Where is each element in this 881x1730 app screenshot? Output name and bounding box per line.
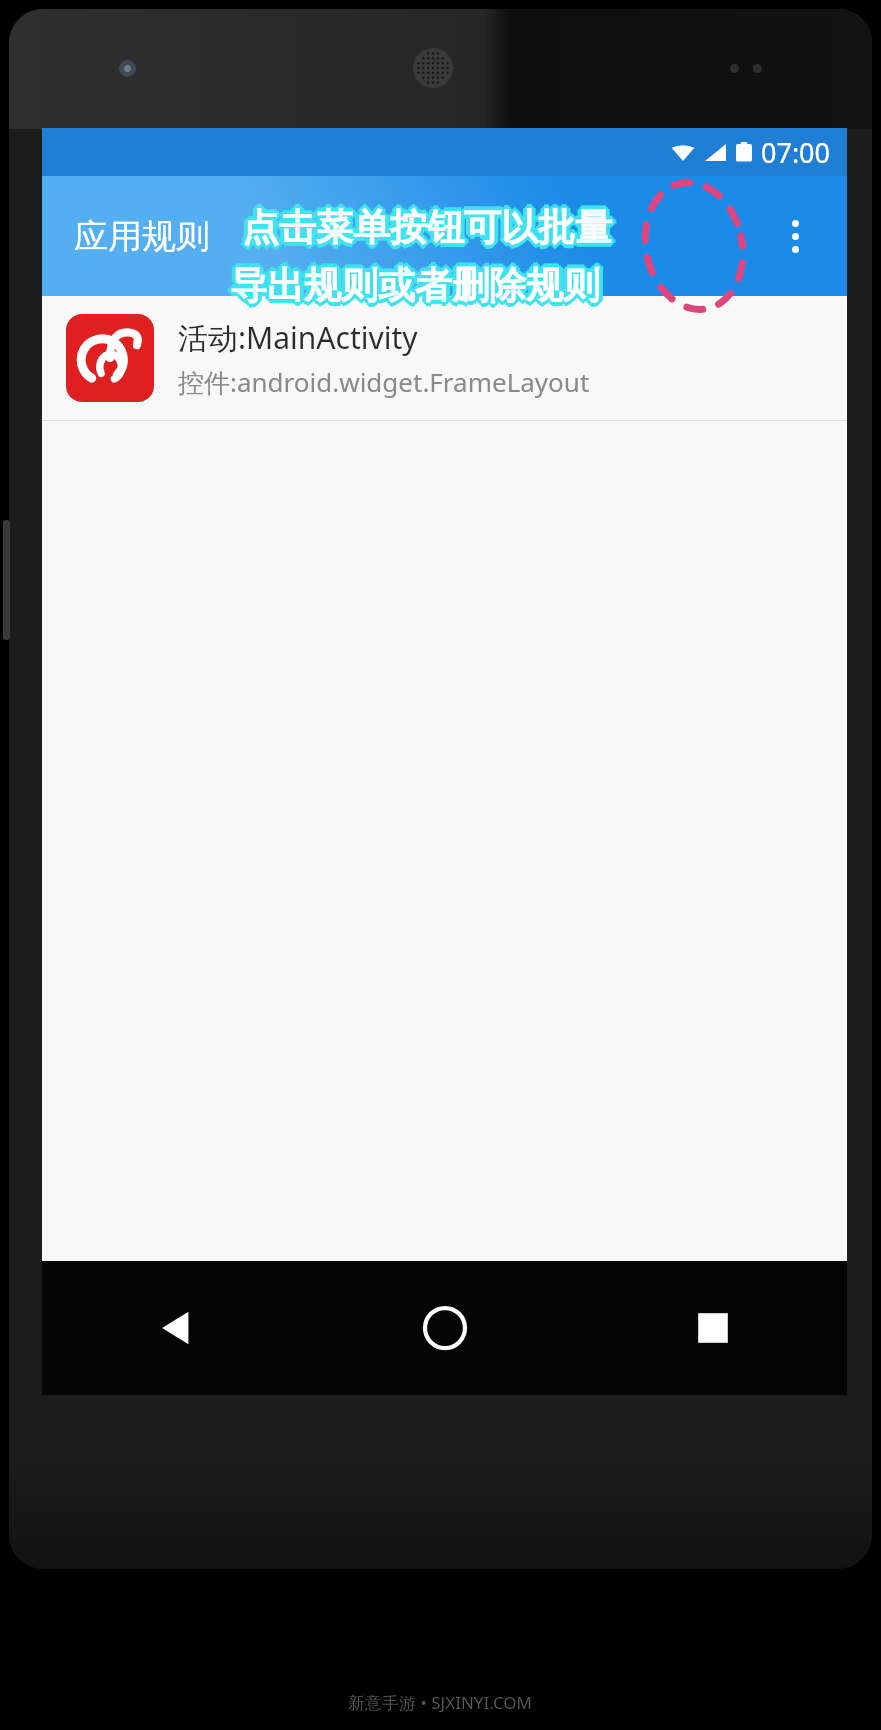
staticText: 点击菜单按钮可以批量: [246, 204, 616, 251]
staticText: 导出规则或者删除规则: [233, 262, 603, 309]
staticText: 点击菜单按钮可以批量: [245, 204, 615, 251]
staticText: 导出规则或者删除规则: [230, 258, 600, 305]
staticText: 点击菜单按钮可以批量: [242, 204, 612, 251]
staticText: 导出规则或者删除规则: [230, 259, 600, 306]
staticText: 07:00: [761, 134, 831, 171]
button[interactable]: Home: [311, 1261, 579, 1395]
staticText: 导出规则或者删除规则: [230, 265, 600, 312]
button[interactable]: Recent apps: [579, 1261, 847, 1395]
staticText: 导出规则或者删除规则: [228, 264, 598, 311]
staticText: 点击菜单按钮可以批量: [240, 202, 610, 249]
staticText: 点击菜单按钮可以批量: [244, 206, 614, 253]
staticText: 导出规则或者删除规则: [232, 264, 602, 311]
staticText: 导出规则或者删除规则: [226, 262, 596, 309]
staticText: 新意手游 • SJXINYI.COM: [348, 1691, 533, 1714]
staticText: 活动:MainActivity: [178, 317, 418, 358]
staticText: 点击菜单按钮可以批量: [244, 202, 614, 249]
staticText: 导出规则或者删除规则: [234, 262, 604, 309]
staticText: 导出规则或者删除规则: [227, 262, 597, 309]
staticText: 点击菜单按钮可以批量: [238, 204, 608, 251]
staticText: 控件:android.widget.FrameLayout: [178, 364, 590, 400]
staticText: 导出规则或者删除规则: [232, 260, 602, 307]
button[interactable]: More options: [759, 200, 831, 272]
staticText: 导出规则或者删除规则: [228, 260, 598, 307]
staticText: 点击菜单按钮可以批量: [242, 208, 612, 255]
button[interactable]: 活动:MainActivity: [42, 296, 847, 421]
staticText: 点击菜单按钮可以批量: [242, 200, 612, 247]
staticText: 点击菜单按钮可以批量: [240, 206, 610, 253]
staticText: 应用规则: [74, 215, 210, 258]
staticText: 导出规则或者删除规则: [230, 266, 600, 313]
staticText: 点击菜单按钮可以批量: [242, 207, 612, 254]
button[interactable]: Back: [42, 1261, 311, 1395]
staticText: 点击菜单按钮可以批量: [239, 204, 609, 251]
staticText: 点击菜单按钮可以批量: [242, 201, 612, 248]
staticText: 导出规则或者删除规则: [230, 262, 600, 309]
